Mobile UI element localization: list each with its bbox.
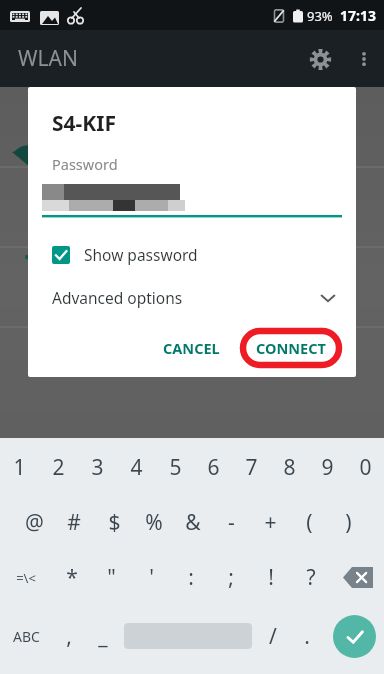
staticText: Password [52,154,118,174]
button[interactable]: . [290,605,324,667]
button[interactable]: - [212,495,251,550]
button[interactable]: 8 [270,440,308,495]
button[interactable]: ) [329,495,368,550]
staticText: _ [98,622,108,651]
button[interactable]: 7 [232,440,270,495]
button[interactable]: More options [344,39,384,79]
staticText: 8 [283,453,296,482]
staticText: 93% [307,7,333,25]
staticText: " [107,563,116,592]
button[interactable]: % [134,495,173,550]
button[interactable]: " [91,550,131,605]
button[interactable]: Delete [331,550,384,605]
staticText: CANCEL [163,338,220,358]
button[interactable]: $ [94,495,134,550]
button[interactable]: ; [211,550,251,605]
staticText: 6 [207,453,220,482]
staticText: 4 [130,453,143,482]
staticText: ( [306,508,313,537]
staticText: 5 [169,453,182,482]
staticText: ? [306,563,316,592]
button[interactable]: 1 [0,440,39,495]
button[interactable] [120,605,256,667]
button[interactable]: , [52,605,86,667]
staticText: 0 [359,453,372,482]
button[interactable]: 2 [39,440,78,495]
staticText: 9 [321,453,334,482]
button[interactable]: 6 [194,440,232,495]
staticText: + [264,508,277,537]
staticText: 7 [245,453,258,482]
button[interactable]: # [54,495,94,550]
staticText: Advanced options [52,287,183,308]
button[interactable]: ! [251,550,291,605]
staticText: . [304,622,310,651]
staticText: $ [108,508,121,537]
button[interactable]: Show password [28,240,356,269]
button[interactable]: _ [86,605,120,667]
staticText: , [66,622,72,651]
button[interactable]: * [52,550,91,605]
staticText: 3 [91,453,104,482]
button[interactable]: ( [290,495,329,550]
staticText: / [269,622,277,651]
button[interactable]: + [251,495,290,550]
staticText: ' [149,563,154,592]
staticText: S4-KIF [52,109,116,138]
button[interactable]: @ [14,495,54,550]
button[interactable]: 3 [78,440,117,495]
button[interactable]: : [171,550,211,605]
staticText: ) [345,508,352,537]
staticText: # [67,508,81,537]
button[interactable]: Advanced options [28,283,356,312]
button[interactable]: 9 [308,440,346,495]
button[interactable]: =\< [0,550,52,605]
staticText: ABC [13,627,40,646]
button[interactable]: ' [131,550,171,605]
button[interactable]: Settings [296,35,344,83]
button[interactable]: Enter [324,605,384,667]
button[interactable]: CANCEL [153,329,230,367]
button[interactable]: ? [291,550,331,605]
staticText: 1 [13,453,26,482]
staticText: 2 [52,453,65,482]
button[interactable]: 5 [156,440,194,495]
staticText: Show password [84,244,198,265]
staticText: WLAN [18,44,78,73]
button[interactable]: 0 [346,440,384,495]
staticText: CONNECT [256,338,326,358]
button[interactable]: ABC [0,605,52,667]
staticText: * [66,563,78,592]
button[interactable]: CONNECT [244,329,338,367]
staticText: @ [25,508,44,537]
staticText: 17:13 [340,6,376,25]
button[interactable]: & [173,495,212,550]
staticText: - [228,508,235,537]
staticText: & [185,508,201,537]
button[interactable]: 4 [117,440,156,495]
staticText: % [145,508,163,537]
staticText: ; [228,563,234,592]
button[interactable]: / [256,605,290,667]
staticText: =\< [16,569,36,587]
staticText: ! [268,563,274,592]
staticText: : [188,563,194,592]
